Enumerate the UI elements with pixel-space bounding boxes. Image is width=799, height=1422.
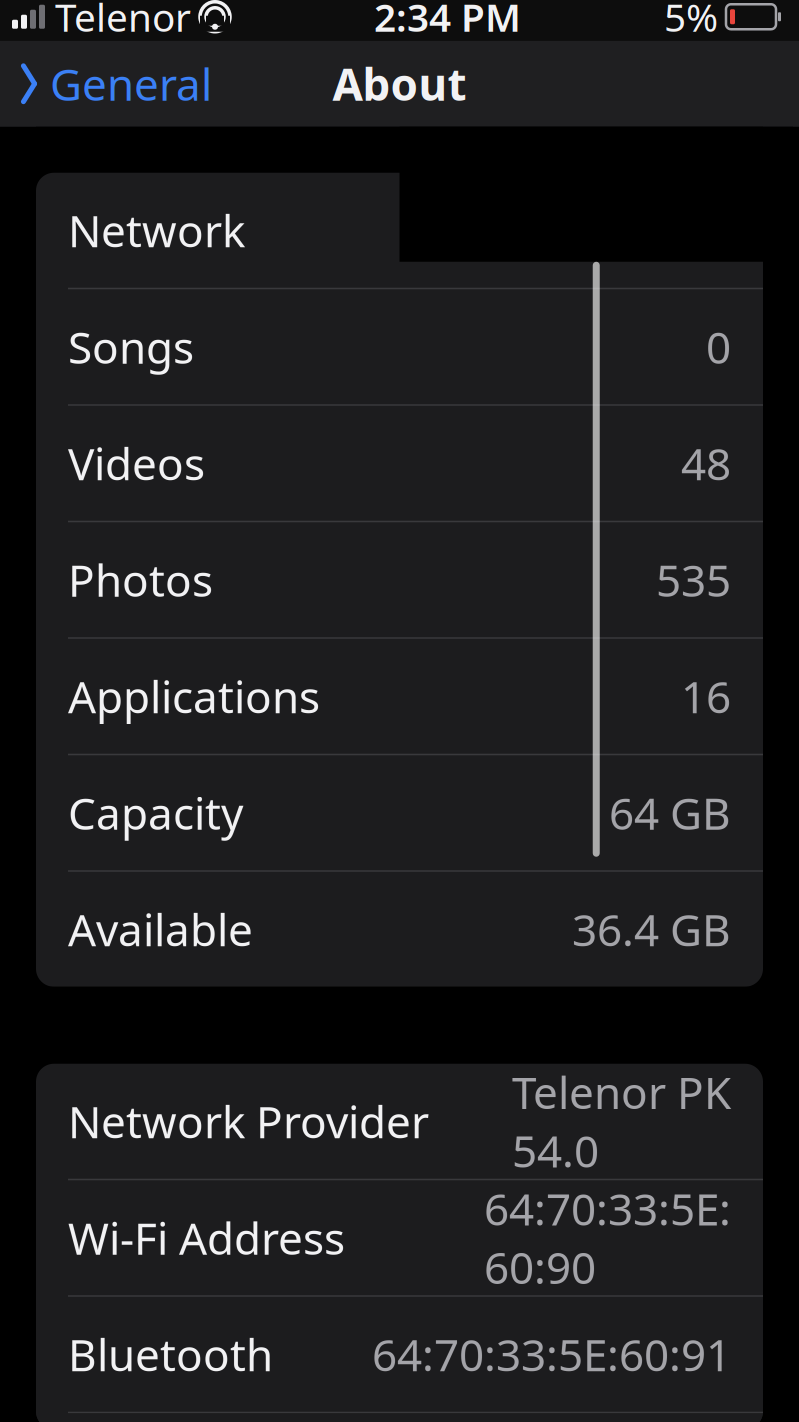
staticText: 5% xyxy=(664,0,718,42)
staticText: Network Provider xyxy=(68,1092,429,1150)
staticText: Applications xyxy=(68,667,320,725)
staticText: Capacity xyxy=(68,783,243,842)
staticText: 2:34 PM xyxy=(374,0,521,42)
staticText: Bluetooth xyxy=(68,1325,273,1383)
button[interactable]: General xyxy=(0,41,226,127)
button[interactable]: Wi-Fi Address xyxy=(36,1180,763,1295)
staticText: Videos xyxy=(68,434,205,492)
staticText: General xyxy=(50,54,212,113)
staticText: Telenor xyxy=(55,0,191,42)
staticText: 0 xyxy=(706,317,731,376)
button[interactable]: Songs xyxy=(36,289,763,404)
staticText: 36.4 GB xyxy=(572,900,731,958)
button[interactable]: Videos xyxy=(36,406,763,521)
button[interactable]: Applications xyxy=(36,639,763,754)
button[interactable]: Network xyxy=(36,173,763,288)
staticText: 535 xyxy=(656,550,731,609)
button[interactable]: Photos xyxy=(36,522,763,637)
staticText: 64:70:33:5E:60:91 xyxy=(372,1325,731,1383)
staticText: Network xyxy=(68,201,245,259)
staticText: 48 xyxy=(681,434,731,492)
staticText: 64 GB xyxy=(609,783,731,842)
staticText: 16 xyxy=(681,667,731,725)
staticText: Telenor PK 54.0 xyxy=(512,1063,731,1180)
staticText: Wi-Fi Address xyxy=(68,1208,345,1267)
staticText: Songs xyxy=(68,317,194,376)
staticText: About xyxy=(332,54,466,113)
button[interactable]: Bluetooth xyxy=(36,1297,763,1412)
staticText: Photos xyxy=(68,550,213,609)
staticText: 64:70:33:5E:60:90 xyxy=(484,1179,731,1296)
staticText: Available xyxy=(68,900,253,958)
button[interactable]: Available xyxy=(36,872,763,987)
button[interactable]: Network Provider xyxy=(36,1064,763,1179)
button[interactable]: Capacity xyxy=(36,755,763,870)
